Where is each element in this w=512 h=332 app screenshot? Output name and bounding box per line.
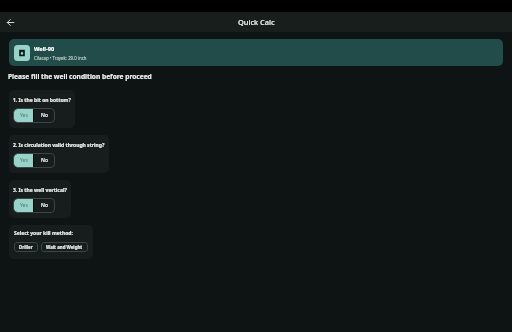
- staticText: No: [41, 157, 48, 164]
- staticText: Wait and Weight: [46, 244, 83, 250]
- staticText: Yes: [20, 157, 28, 164]
- button[interactable]: Yes: [14, 109, 33, 122]
- staticText: Driller: [19, 244, 33, 250]
- staticText: Yes: [20, 202, 28, 209]
- button[interactable]: No: [34, 153, 55, 168]
- button[interactable]: Yes: [14, 199, 33, 212]
- staticText: 3. Is the well vertical?: [13, 187, 67, 194]
- button[interactable]: Yes: [14, 154, 33, 167]
- button[interactable]: Driller: [14, 242, 38, 252]
- button[interactable]: Wait and Weight: [41, 242, 88, 252]
- staticText: Cilacap • Trayek: 29.0 inch: [34, 55, 87, 61]
- staticText: No: [41, 112, 48, 119]
- staticText: Select your kill method:: [14, 230, 73, 237]
- staticText: Please fill the well condition before pr…: [8, 72, 152, 81]
- button[interactable]: Well-90: [9, 39, 503, 66]
- staticText: 2. Is circulation valid through string?: [13, 142, 105, 149]
- staticText: No: [41, 202, 48, 209]
- button[interactable]: No: [34, 108, 55, 123]
- staticText: 1. Is the bit on bottom?: [13, 97, 71, 104]
- button[interactable]: No: [34, 198, 55, 213]
- staticText: Well-90: [34, 45, 55, 53]
- staticText: Quick Calc: [238, 17, 275, 27]
- staticText: Yes: [20, 112, 28, 119]
- button[interactable]: Back: [3, 15, 17, 29]
